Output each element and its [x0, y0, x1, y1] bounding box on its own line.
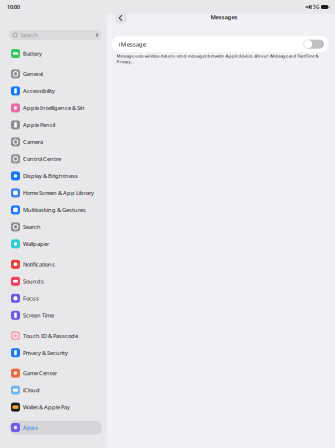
button[interactable]: Screen Time — [9, 308, 102, 322]
staticText: 5G — [313, 4, 319, 10]
button[interactable]: Home Screen & App Library — [9, 186, 102, 200]
button[interactable]: Touch ID & Passcode — [9, 329, 102, 343]
button[interactable]: Game Center — [9, 366, 102, 380]
staticText: Apple Intelligence & Siri — [23, 104, 84, 112]
staticText: iMessage — [119, 40, 146, 48]
staticText: Control Centre — [23, 155, 61, 163]
staticText: Messages — [210, 13, 237, 21]
button[interactable]: Notifications — [9, 257, 102, 271]
staticText: Search — [23, 223, 41, 231]
button[interactable]: Display & Brightness — [9, 169, 102, 183]
staticText: Accessibility — [23, 87, 55, 95]
staticText: Focus — [23, 294, 39, 302]
staticText: Screen Time — [23, 311, 54, 319]
staticText: Privacy & Security — [23, 349, 68, 357]
staticText: Wallpaper — [23, 240, 49, 248]
staticText: Apps — [23, 424, 38, 431]
button[interactable]: iMessage — [304, 40, 324, 49]
button[interactable]: Back — [115, 12, 127, 24]
button[interactable]: Focus — [9, 291, 102, 305]
staticText: Game Center — [23, 369, 57, 377]
staticText: Notifications — [23, 260, 55, 268]
staticText: Message uses wireless data to send messa… — [116, 53, 318, 65]
staticText: Sounds — [23, 277, 44, 285]
staticText: Multitasking & Gestures — [23, 206, 86, 214]
button[interactable]: General — [9, 67, 102, 81]
button[interactable]: Wallet & Apple Pay — [9, 400, 102, 414]
staticText: Battery — [23, 50, 42, 57]
button[interactable]: Multitasking & Gestures — [9, 203, 102, 217]
staticText: Camera — [23, 138, 43, 146]
button[interactable]: Battery — [9, 46, 102, 60]
staticText: General — [23, 70, 43, 78]
button[interactable]: Wallpaper — [9, 237, 102, 251]
button[interactable]: iCloud — [9, 383, 102, 397]
button[interactable]: Privacy & Security — [9, 346, 102, 360]
button[interactable]: Camera — [9, 135, 102, 149]
button[interactable]: Apps — [9, 420, 102, 434]
button[interactable]: Search — [9, 220, 102, 234]
button[interactable]: Apple Pencil — [9, 118, 102, 132]
staticText: Wallet & Apple Pay — [23, 403, 70, 411]
button[interactable]: Apple Intelligence & Siri — [9, 101, 102, 115]
staticText: iCloud — [23, 386, 40, 394]
button[interactable]: Sounds — [9, 274, 102, 288]
staticText: Search — [20, 31, 38, 39]
staticText: Touch ID & Passcode — [23, 332, 78, 340]
staticText: 10:00 — [7, 3, 20, 11]
staticText: Apple Pencil — [23, 121, 55, 129]
staticText: Display & Brightness — [23, 172, 78, 180]
button[interactable]: Accessibility — [9, 84, 102, 98]
staticText: Home Screen & App Library — [23, 189, 94, 197]
button[interactable]: Control Centre — [9, 152, 102, 166]
